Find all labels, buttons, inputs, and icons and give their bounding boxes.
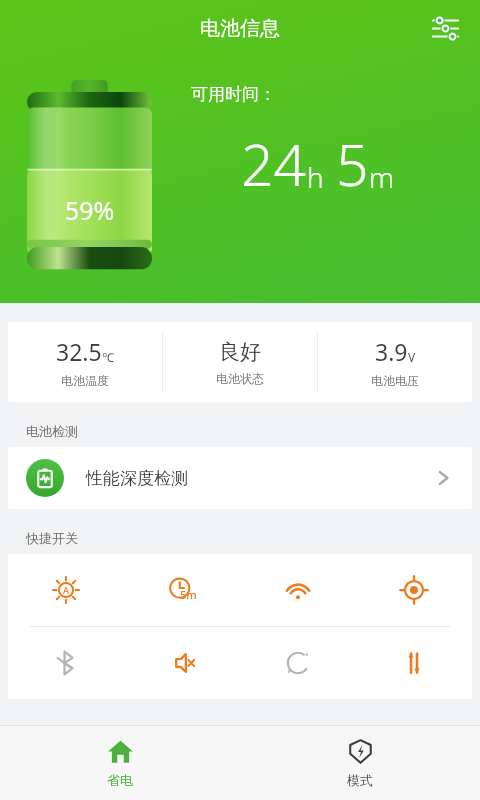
button[interactable]: Wi-Fi [240, 554, 356, 626]
button[interactable]: Bluetooth [8, 627, 124, 699]
button[interactable]: Settings [423, 6, 467, 50]
staticText: 24 [241, 125, 307, 203]
staticText: A [63, 584, 69, 596]
button[interactable]: Mute [124, 627, 240, 699]
staticText: 5 [336, 125, 369, 203]
staticText: 3.9 [375, 336, 408, 367]
button[interactable]: 省电 [0, 726, 240, 800]
button[interactable]: 良好 [163, 322, 317, 402]
staticText: 电池电压 [371, 373, 419, 388]
button[interactable]: Auto brightness [8, 554, 124, 626]
staticText: 性能深度检测 [86, 468, 188, 489]
button[interactable]: GPS [356, 554, 472, 626]
staticText: 省电 [107, 772, 133, 788]
staticText: 电池温度 [61, 373, 109, 388]
staticText: 可用时间： [191, 84, 276, 105]
button[interactable]: Screen timeout [124, 554, 240, 626]
button[interactable]: 3.9 [318, 322, 472, 402]
staticText: m [369, 158, 395, 196]
button[interactable]: 32.5 [8, 322, 162, 402]
staticText: 32.5 [56, 336, 102, 367]
staticText: 良好 [219, 339, 261, 365]
staticText: h [307, 158, 324, 196]
staticText: 电池状态 [216, 371, 264, 386]
button[interactable]: Sync [240, 627, 356, 699]
staticText: 5m [180, 587, 197, 602]
staticText: 快捷开关 [26, 530, 78, 546]
staticText: 电池检测 [26, 423, 78, 439]
staticText: V [408, 349, 416, 365]
button[interactable]: Mobile data [356, 627, 472, 699]
button[interactable]: 模式 [240, 726, 480, 800]
staticText: 模式 [347, 772, 373, 788]
staticText: 59% [65, 193, 115, 227]
button[interactable]: 性能深度检测 [8, 447, 472, 509]
staticText: 电池信息 [200, 16, 280, 41]
staticText: ℃ [102, 349, 114, 365]
